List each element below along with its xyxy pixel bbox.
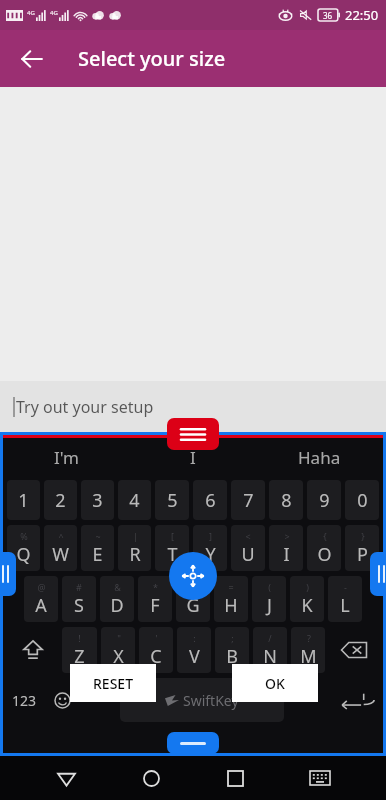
button[interactable]: Resize keyboard right <box>370 552 386 596</box>
button[interactable]: Emoji <box>44 678 81 722</box>
staticText: O <box>317 542 332 567</box>
button[interactable]: Home <box>129 756 173 800</box>
staticText: # <box>76 581 82 593</box>
staticText: V <box>189 644 200 669</box>
button[interactable]: OK <box>232 664 318 702</box>
staticText: ^ <box>58 530 64 542</box>
button[interactable]: 2 <box>44 480 77 520</box>
button[interactable]: Hide keyboard <box>298 756 342 800</box>
button[interactable]: > <box>269 525 303 571</box>
button[interactable]: ? <box>291 627 325 673</box>
button[interactable]: 6 <box>193 480 227 520</box>
button[interactable]: 8 <box>269 480 303 520</box>
staticText: SwiftKey <box>183 691 239 710</box>
staticText: ~ <box>95 530 101 542</box>
button[interactable]: % <box>7 525 40 571</box>
staticText: @ <box>37 581 46 593</box>
staticText: [ <box>171 530 174 542</box>
button[interactable]: ; <box>215 627 249 673</box>
staticText: 123 <box>12 691 37 710</box>
staticText: + <box>190 581 196 593</box>
button[interactable]: ! <box>62 627 97 673</box>
staticText: 9 <box>319 488 330 513</box>
button[interactable]: I'm <box>3 438 129 476</box>
staticText: X <box>113 644 124 669</box>
staticText: P <box>357 542 368 567</box>
button[interactable]: " <box>101 627 135 673</box>
staticText: 2 <box>55 488 66 513</box>
button[interactable]: Shift <box>5 627 60 673</box>
button[interactable]: ~ <box>81 525 114 571</box>
staticText: 1 <box>18 488 29 513</box>
button[interactable]: Resize keyboard left <box>0 552 16 596</box>
button[interactable]: Haha <box>256 438 383 476</box>
button[interactable]: 5 <box>155 480 189 520</box>
staticText: OK <box>265 674 285 693</box>
button[interactable]: Comma <box>81 678 118 722</box>
staticText: } <box>361 530 365 542</box>
button[interactable]: + <box>176 576 210 622</box>
button[interactable]: Back <box>8 35 56 83</box>
button[interactable]: & <box>100 576 134 622</box>
staticText: U <box>241 542 255 567</box>
button[interactable]: * <box>138 576 172 622</box>
button[interactable]: ) <box>290 576 324 622</box>
staticText: C <box>150 644 162 669</box>
button[interactable]: Period <box>286 678 323 722</box>
button[interactable]: @ <box>24 576 58 622</box>
button[interactable]: ^ <box>44 525 77 571</box>
staticText: Y <box>205 542 216 567</box>
button[interactable]: 9 <box>307 480 341 520</box>
button[interactable]: ( <box>252 576 286 622</box>
button[interactable]: | <box>118 525 151 571</box>
button[interactable]: = <box>214 576 248 622</box>
button[interactable]: : <box>177 627 211 673</box>
button[interactable]: { <box>307 525 341 571</box>
staticText: G <box>186 593 200 618</box>
staticText: ? <box>307 632 311 644</box>
staticText: 22:50 <box>345 6 379 24</box>
staticText: Q <box>16 542 31 567</box>
button[interactable]: [ <box>155 525 189 571</box>
button[interactable]: Enter <box>323 678 381 722</box>
button[interactable]: Back <box>44 756 88 800</box>
button[interactable]: Space <box>120 678 284 722</box>
staticText: F <box>150 593 160 618</box>
staticText: ] <box>209 530 212 542</box>
staticText: I'm <box>54 446 79 469</box>
staticText: " <box>117 632 121 644</box>
staticText: D <box>110 593 124 618</box>
button[interactable]: I <box>129 438 256 476</box>
button[interactable]: Move keyboard <box>169 552 217 600</box>
button[interactable]: Backspace <box>327 627 381 673</box>
button[interactable]: } <box>345 525 379 571</box>
staticText: ( <box>268 581 271 593</box>
button[interactable]: 7 <box>231 480 265 520</box>
staticText: L <box>340 593 350 618</box>
button[interactable]: 1 <box>7 480 40 520</box>
button[interactable]: RESET <box>70 664 156 702</box>
button[interactable]: 3 <box>81 480 114 520</box>
staticText: 3 <box>92 488 103 513</box>
button[interactable]: ' <box>139 627 173 673</box>
button[interactable]: # <box>62 576 96 622</box>
button[interactable]: 0 <box>345 480 379 520</box>
button[interactable]: 4 <box>118 480 151 520</box>
button[interactable]: < <box>231 525 265 571</box>
staticText: N <box>263 644 277 669</box>
staticText: A <box>35 593 47 618</box>
staticText: < <box>245 530 251 542</box>
staticText: 36 <box>323 10 333 21</box>
button[interactable]: Resize keyboard top <box>167 418 219 450</box>
staticText: T <box>167 542 178 567</box>
button[interactable]: Resize keyboard bottom <box>167 732 219 754</box>
button[interactable]: ] <box>193 525 227 571</box>
button[interactable]: 123 <box>5 678 44 722</box>
button[interactable]: Recents <box>213 756 257 800</box>
staticText: { <box>323 530 327 542</box>
staticText: 6 <box>205 488 216 513</box>
button[interactable]: / <box>253 627 287 673</box>
staticText: : <box>193 632 196 644</box>
button[interactable]: - <box>328 576 362 622</box>
staticText: ) <box>306 581 309 593</box>
